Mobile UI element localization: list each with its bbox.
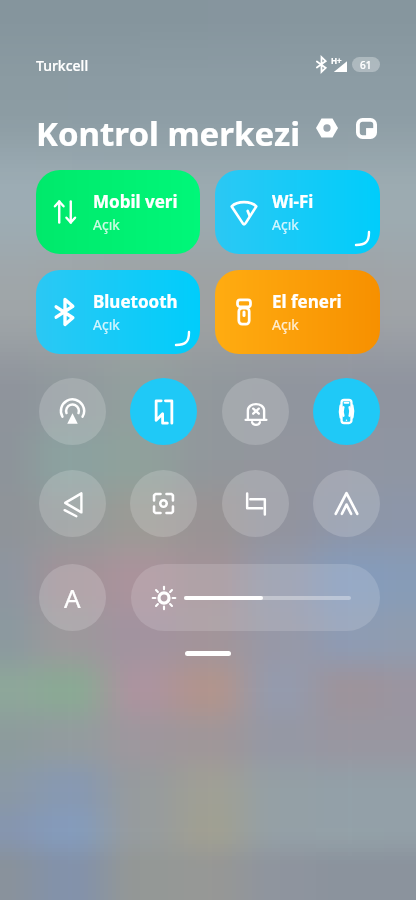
- staticText: Bluetooth: [93, 290, 178, 313]
- button[interactable]: Auto rotate: [130, 378, 197, 445]
- staticText: Açık: [93, 315, 120, 334]
- staticText: A: [64, 580, 81, 615]
- button[interactable]: Mobil veri: [36, 170, 200, 254]
- staticText: Turkcell: [36, 56, 89, 75]
- staticText: Açık: [272, 315, 299, 334]
- staticText: Açık: [272, 215, 299, 234]
- staticText: Kontrol merkezi: [36, 111, 301, 156]
- button[interactable]: Cast: [313, 470, 380, 537]
- button[interactable]: Bluetooth: [36, 270, 200, 354]
- button[interactable]: Wi-Fi: [215, 170, 380, 254]
- button[interactable]: Brightness: [131, 564, 380, 631]
- button[interactable]: Auto brightness: [39, 564, 106, 631]
- button[interactable]: Edit: [352, 114, 380, 142]
- button[interactable]: Settings: [313, 114, 341, 142]
- button[interactable]: El feneri: [215, 270, 380, 354]
- button[interactable]: Silent: [39, 470, 106, 537]
- button[interactable]: Screenshot: [222, 470, 289, 537]
- button[interactable]: Scanner: [130, 470, 197, 537]
- button[interactable]: Vibrate: [313, 378, 380, 445]
- button[interactable]: Hotspot: [39, 378, 106, 445]
- staticText: Wi-Fi: [272, 190, 314, 213]
- staticText: 61: [360, 58, 372, 72]
- staticText: El feneri: [272, 290, 342, 313]
- staticText: H+: [331, 55, 342, 66]
- button[interactable]: Do not disturb: [222, 378, 289, 445]
- staticText: Mobil veri: [93, 190, 178, 213]
- staticText: Açık: [93, 215, 120, 234]
